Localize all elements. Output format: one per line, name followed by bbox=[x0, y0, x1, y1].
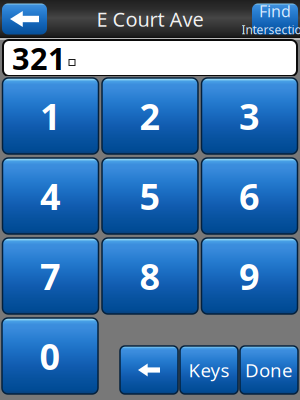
staticText: 9 bbox=[239, 252, 260, 300]
staticText: 7 bbox=[40, 252, 61, 300]
button[interactable]: 9 bbox=[201, 238, 297, 314]
staticText: 3 bbox=[239, 92, 260, 140]
staticText: 1 bbox=[40, 92, 61, 140]
button[interactable]: 0 bbox=[2, 318, 98, 394]
button[interactable]: 5 bbox=[102, 158, 198, 234]
staticText: Find bbox=[259, 0, 291, 22]
button[interactable]: 7 bbox=[2, 238, 98, 314]
staticText: 2 bbox=[139, 92, 160, 140]
button[interactable]: 8 bbox=[102, 238, 198, 314]
button[interactable]: 2 bbox=[102, 78, 198, 154]
button[interactable] bbox=[120, 346, 178, 394]
staticText: 6 bbox=[239, 172, 260, 220]
staticText: 8 bbox=[139, 252, 160, 300]
staticText: Done bbox=[245, 358, 293, 382]
staticText: 4 bbox=[40, 172, 61, 220]
staticText: 5 bbox=[139, 172, 160, 220]
staticText: 321 bbox=[12, 38, 66, 78]
button[interactable]: 3 bbox=[201, 78, 297, 154]
button[interactable]: Done bbox=[240, 346, 298, 394]
button[interactable]: Keys bbox=[180, 346, 238, 394]
staticText: Intersection bbox=[241, 22, 300, 38]
button[interactable]: Find bbox=[252, 3, 298, 34]
staticText: Keys bbox=[188, 358, 229, 382]
button[interactable]: 6 bbox=[201, 158, 297, 234]
button[interactable]: 1 bbox=[2, 78, 98, 154]
staticText: 0 bbox=[39, 332, 60, 380]
staticText: E Court Ave bbox=[96, 6, 203, 32]
button[interactable]: Back bbox=[2, 3, 47, 34]
button[interactable]: 4 bbox=[2, 158, 98, 234]
